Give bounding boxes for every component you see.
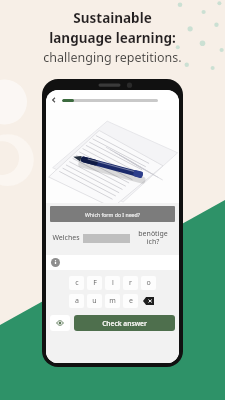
button[interactable]: e xyxy=(123,294,138,308)
staticText: F xyxy=(93,278,97,288)
staticText: Check answer xyxy=(102,319,147,328)
staticText: l xyxy=(112,278,114,288)
button[interactable]: Check answer xyxy=(74,315,175,331)
staticText: o xyxy=(146,278,151,288)
staticText: language learning: xyxy=(49,29,176,47)
button[interactable]: r xyxy=(123,276,138,290)
staticText: Welches xyxy=(52,233,80,243)
staticText: c xyxy=(75,278,79,288)
staticText: Which form do I need? xyxy=(85,211,140,218)
staticText: e xyxy=(129,296,133,306)
button[interactable]: Backspace xyxy=(141,294,156,308)
staticText: u xyxy=(92,296,97,306)
button[interactable]: F xyxy=(87,276,102,290)
button[interactable]: c xyxy=(69,276,84,290)
button[interactable]: Show answer xyxy=(50,315,70,331)
button[interactable]: l xyxy=(105,276,120,290)
staticText: challenging repetitions. xyxy=(43,49,182,66)
button[interactable]: a xyxy=(69,294,84,308)
button[interactable]: o xyxy=(141,276,156,290)
staticText: a xyxy=(75,296,79,306)
staticText: Sustainable xyxy=(73,9,152,27)
staticText: m xyxy=(109,296,116,306)
staticText: benötige ich? xyxy=(133,229,173,247)
staticText: r xyxy=(129,278,132,288)
button[interactable]: m xyxy=(105,294,120,308)
button[interactable]: u xyxy=(87,294,102,308)
button[interactable]: Which form do I need? xyxy=(50,206,175,222)
button[interactable]: Back xyxy=(46,90,62,110)
button[interactable]: Hint xyxy=(51,258,60,267)
